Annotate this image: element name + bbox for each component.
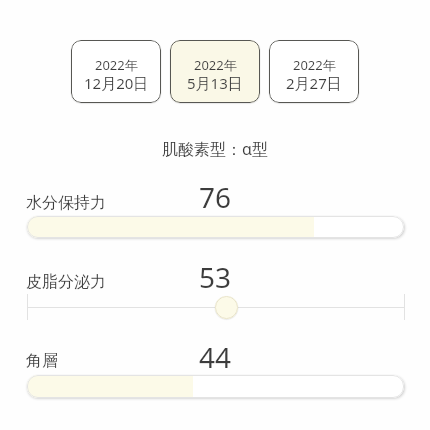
staticText: 2022年 xyxy=(194,56,237,74)
staticText: 肌酸素型：α型 xyxy=(162,138,268,160)
staticText: 12月20日 xyxy=(84,73,149,93)
staticText: 2022年 xyxy=(293,56,336,74)
staticText: 皮脂分泌力 xyxy=(26,272,106,292)
staticText: 水分保持力 xyxy=(26,193,106,213)
button[interactable]: slider thumb xyxy=(215,296,238,319)
staticText: 53 xyxy=(199,258,232,296)
button[interactable]: progress xyxy=(27,216,404,238)
button[interactable]: 2022年 xyxy=(170,40,260,103)
button[interactable]: progress xyxy=(27,375,404,398)
button[interactable]: 2022年 xyxy=(269,40,359,103)
staticText: 2022年 xyxy=(95,56,138,74)
button[interactable]: 2022年 xyxy=(71,40,161,103)
staticText: 76 xyxy=(199,178,232,216)
staticText: 2月27日 xyxy=(286,73,342,93)
staticText: 角層 xyxy=(26,351,58,371)
staticText: 5月13日 xyxy=(187,73,243,93)
staticText: 44 xyxy=(199,338,232,376)
